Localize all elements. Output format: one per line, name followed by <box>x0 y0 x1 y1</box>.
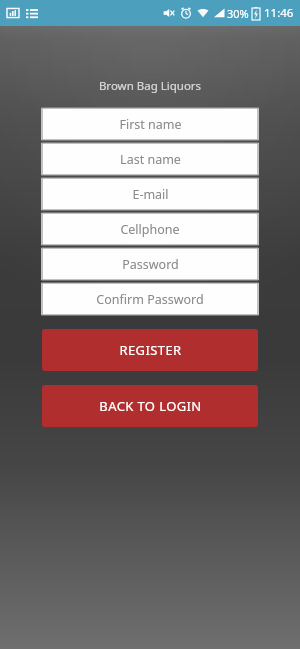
staticText: Cellphone <box>120 221 180 238</box>
other: Wi-Fi <box>197 7 209 19</box>
other: Alarm <box>180 7 192 19</box>
button[interactable]: Last name <box>41 143 259 175</box>
button[interactable]: Confirm Password <box>41 283 259 315</box>
button[interactable]: First name <box>41 108 259 140</box>
other: Gallery <box>7 7 19 19</box>
other: List <box>26 7 38 19</box>
staticText: BACK TO LOGIN <box>99 397 202 415</box>
staticText: E-mail <box>132 186 169 203</box>
other: Signal strength <box>213 7 225 19</box>
staticText: 30% <box>227 6 249 21</box>
button[interactable]: BACK TO LOGIN <box>42 385 258 427</box>
staticText: Password <box>122 256 179 273</box>
staticText: REGISTER <box>119 341 182 359</box>
staticText: Confirm Password <box>96 291 204 308</box>
other: Battery <box>252 7 260 20</box>
button[interactable]: Password <box>41 248 259 280</box>
button[interactable]: E-mail <box>41 178 259 210</box>
button[interactable]: REGISTER <box>42 329 258 371</box>
staticText: First name <box>119 116 182 133</box>
button[interactable]: Cellphone <box>41 213 259 245</box>
staticText: Brown Bag Liquors <box>0 78 300 94</box>
staticText: Last name <box>120 151 181 168</box>
staticText: 11:46 <box>264 5 294 21</box>
other: Muted <box>163 7 175 19</box>
